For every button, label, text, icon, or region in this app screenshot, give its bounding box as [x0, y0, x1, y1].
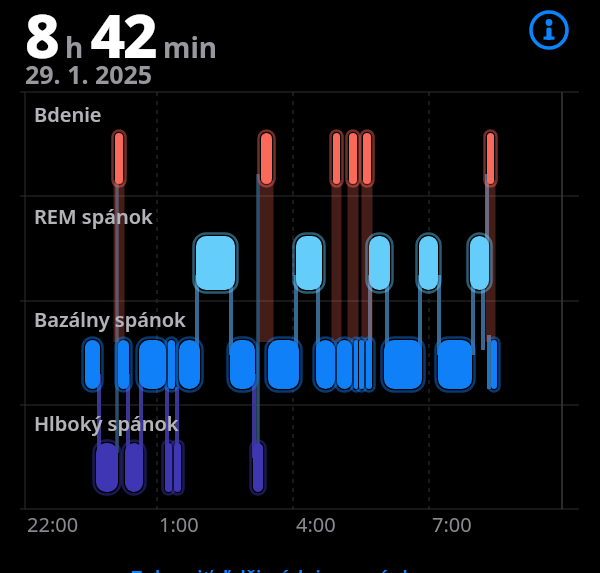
staticText: Zobraziť ďalšie údaje o spánku: [131, 564, 427, 573]
staticText: 8 h 42 min: [25, 0, 217, 76]
staticText: Bazálny spánok: [34, 306, 186, 333]
staticText: 29. 1. 2025: [25, 57, 153, 91]
staticText: Bdenie: [34, 101, 102, 128]
staticText: Hlboký spánok: [34, 410, 179, 437]
staticText: 4:00: [296, 511, 336, 538]
staticText: 1:00: [159, 511, 199, 538]
button[interactable]: Zobraziť ďalšie údaje o spánku: [131, 564, 471, 573]
staticText: 7:00: [432, 511, 472, 538]
staticText: REM spánok: [34, 203, 153, 230]
button[interactable]: [527, 8, 571, 52]
staticText: 22:00: [27, 511, 79, 538]
